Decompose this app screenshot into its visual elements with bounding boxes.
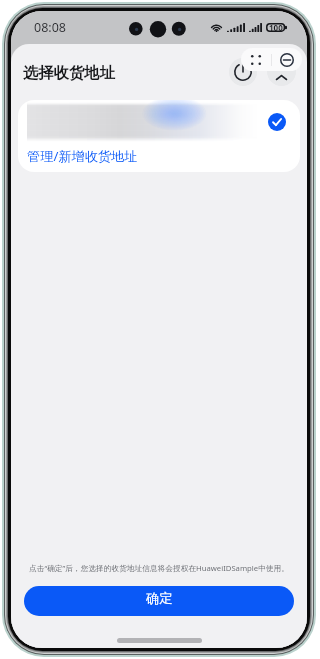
button[interactable]: Close mini app xyxy=(272,48,302,71)
button[interactable]: Expand xyxy=(267,57,296,86)
staticText: 管理/新增收货地址 xyxy=(27,147,138,165)
button[interactable]: Mini app menu xyxy=(241,48,271,71)
button[interactable]: Selected xyxy=(268,113,286,131)
button[interactable] xyxy=(27,100,259,144)
staticText: 选择收货地址 xyxy=(23,63,115,82)
staticText: 100 xyxy=(269,22,283,33)
button[interactable]: 确定 xyxy=(24,586,294,616)
button[interactable]: Power xyxy=(229,58,257,86)
staticText: 点击“确定”后，您选择的收货地址信息将会授权在HuaweiIDSample中使用… xyxy=(15,563,303,574)
staticText: 确定 xyxy=(146,590,173,607)
staticText: 08:08 xyxy=(34,19,66,36)
button[interactable]: 管理/新增收货地址 xyxy=(18,139,300,172)
